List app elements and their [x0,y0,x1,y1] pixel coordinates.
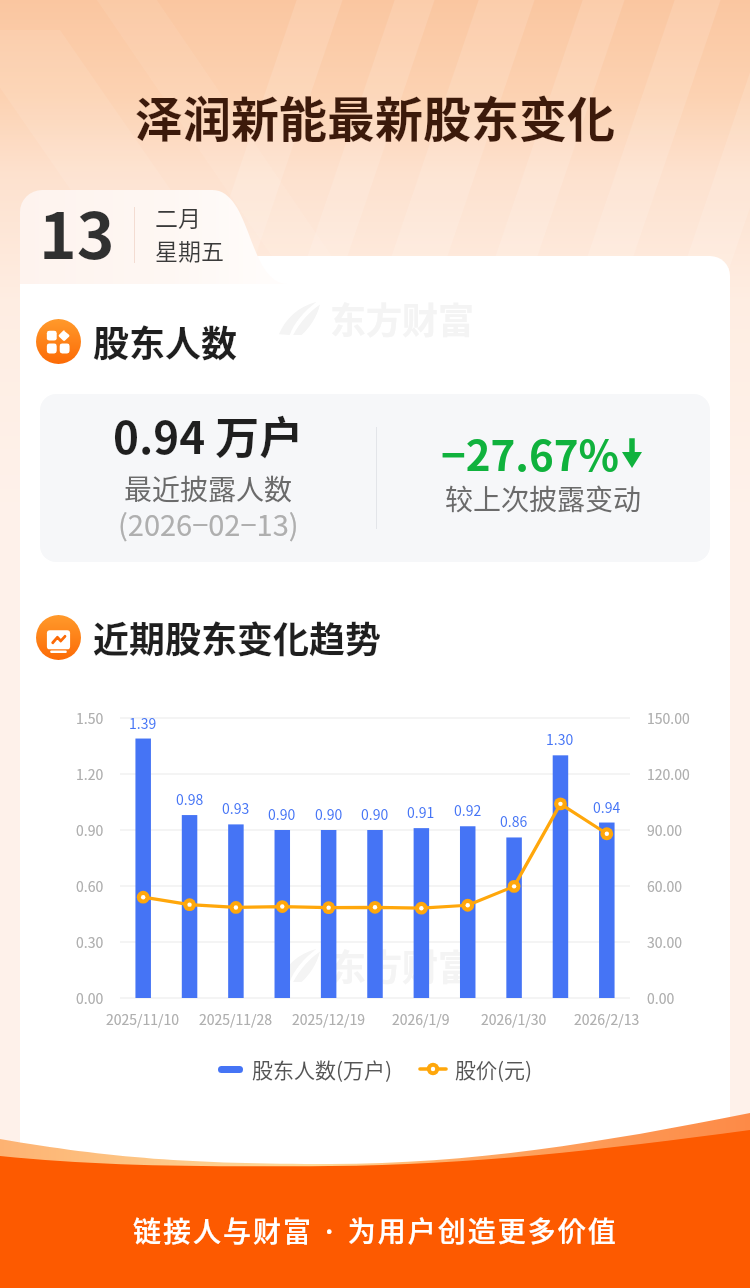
other: 趋势 [36,615,81,660]
staticText: 星期五 [155,233,224,266]
button[interactable]: 0.94 万户 [40,394,710,562]
staticText: 1.50 [76,708,104,728]
staticText: 60.00 [647,876,682,896]
staticText: 0.30 [76,932,104,952]
staticText: 0.60 [76,876,104,896]
staticText: 150.00 [647,708,690,728]
staticText: 1.20 [76,764,104,784]
staticText: 0.00 [76,988,104,1008]
staticText: 泽润新能最新股东变化 [135,81,616,151]
staticText: −27.67% [441,422,619,483]
staticText: 股价(元) [455,1054,533,1084]
staticText: 13 [39,185,115,278]
staticText: 近期股东变化趋势 [93,611,382,663]
button[interactable]: 股东人数(万户) [218,1054,393,1084]
staticText: 东方财富 [330,292,475,344]
staticText: 东方财富 [330,939,475,991]
button[interactable]: 股价(元) [420,1054,533,1084]
staticText: 0.90 [268,804,296,824]
staticText: 链接人与财富 · 为用户创造更多价值 [133,1210,618,1251]
button[interactable]: 趋势 [36,611,382,663]
staticText: 0.91 [407,802,435,822]
staticText: 0.90 [315,804,343,824]
staticText: 股东人数 [93,315,238,367]
staticText: 0.00 [647,988,675,1008]
staticText: 0.90 [76,820,104,840]
staticText: 2025/11/10 [106,1009,180,1029]
staticText: 2025/12/19 [292,1009,366,1029]
staticText: 二月 [155,200,201,233]
staticText: 2026/2/13 [574,1009,640,1029]
staticText: 1.39 [129,713,157,733]
staticText: 0.90 [361,804,389,824]
staticText: 2026/1/9 [392,1009,450,1029]
staticText: 1.30 [546,729,574,749]
staticText: 0.98 [176,789,204,809]
staticText: 0.93 [222,798,250,818]
staticText: 120.00 [647,764,690,784]
staticText: 2026/1/30 [481,1009,547,1029]
staticText: 90.00 [647,820,682,840]
other: 股东人数 [36,319,81,364]
staticText: 最近披露人数 [124,468,293,509]
staticText: 0.94 [593,797,621,817]
staticText: (2026−02−13) [118,502,299,544]
staticText: 0.94 万户 [113,403,304,467]
staticText: 0.86 [500,811,528,831]
staticText: 股东人数(万户) [252,1054,393,1084]
staticText: 30.00 [647,932,682,952]
staticText: 2025/11/28 [199,1009,273,1029]
button[interactable]: 股东人数 [36,315,238,367]
staticText: 0.92 [454,800,482,820]
staticText: 较上次披露变动 [445,478,642,519]
